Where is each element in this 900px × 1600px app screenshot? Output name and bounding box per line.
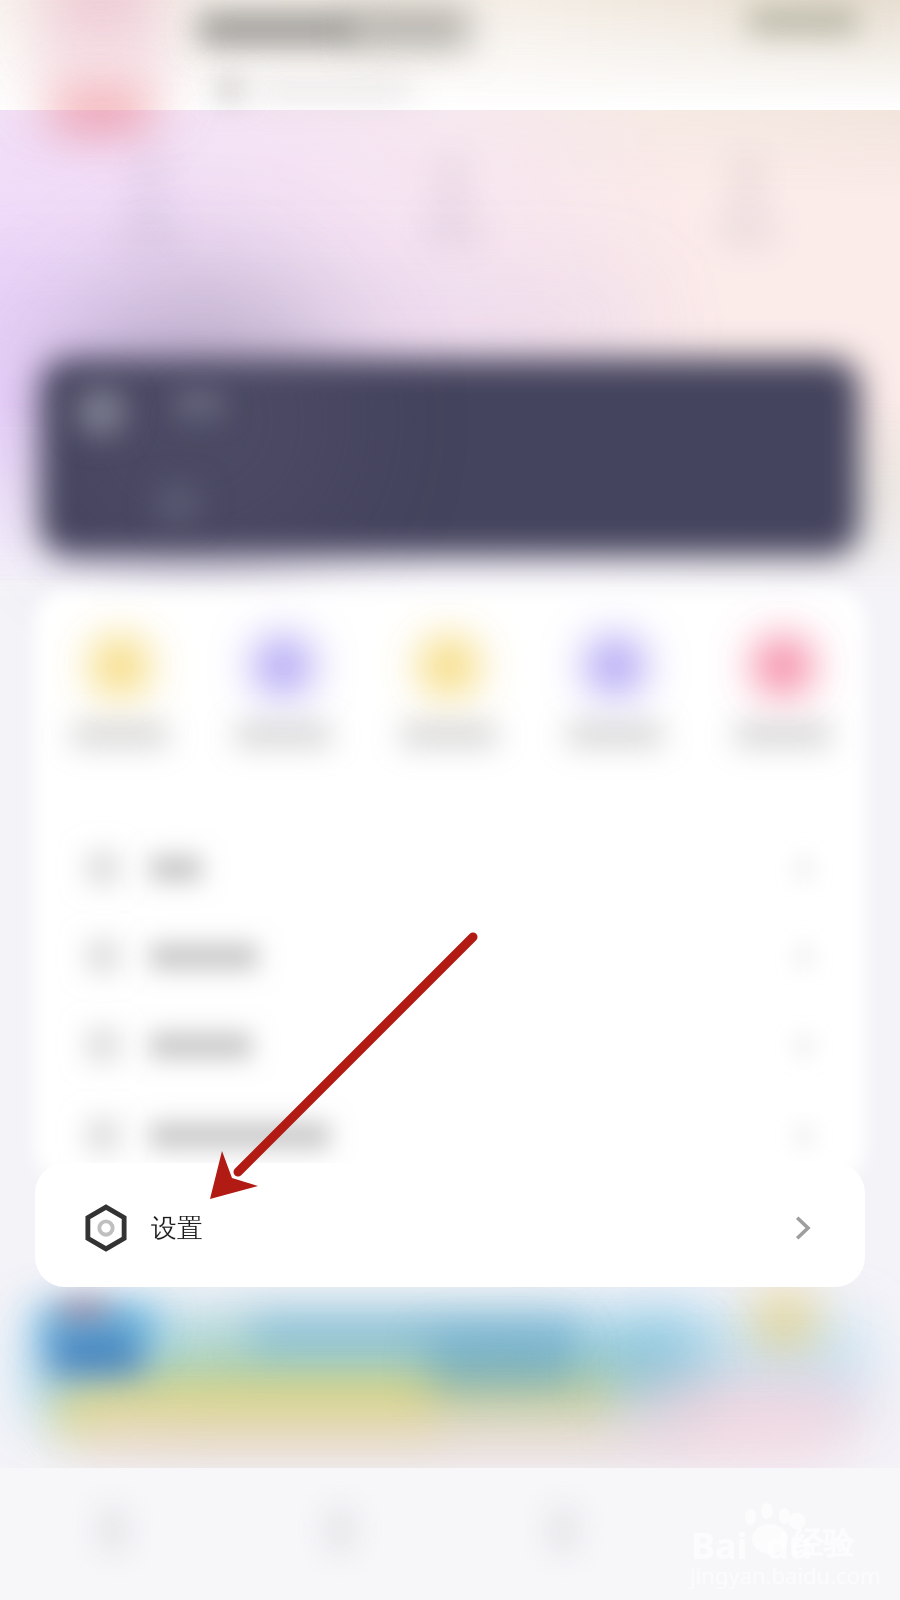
button[interactable]: 设置 bbox=[35, 1172, 865, 1284]
staticText: 设置 bbox=[151, 1212, 203, 1245]
